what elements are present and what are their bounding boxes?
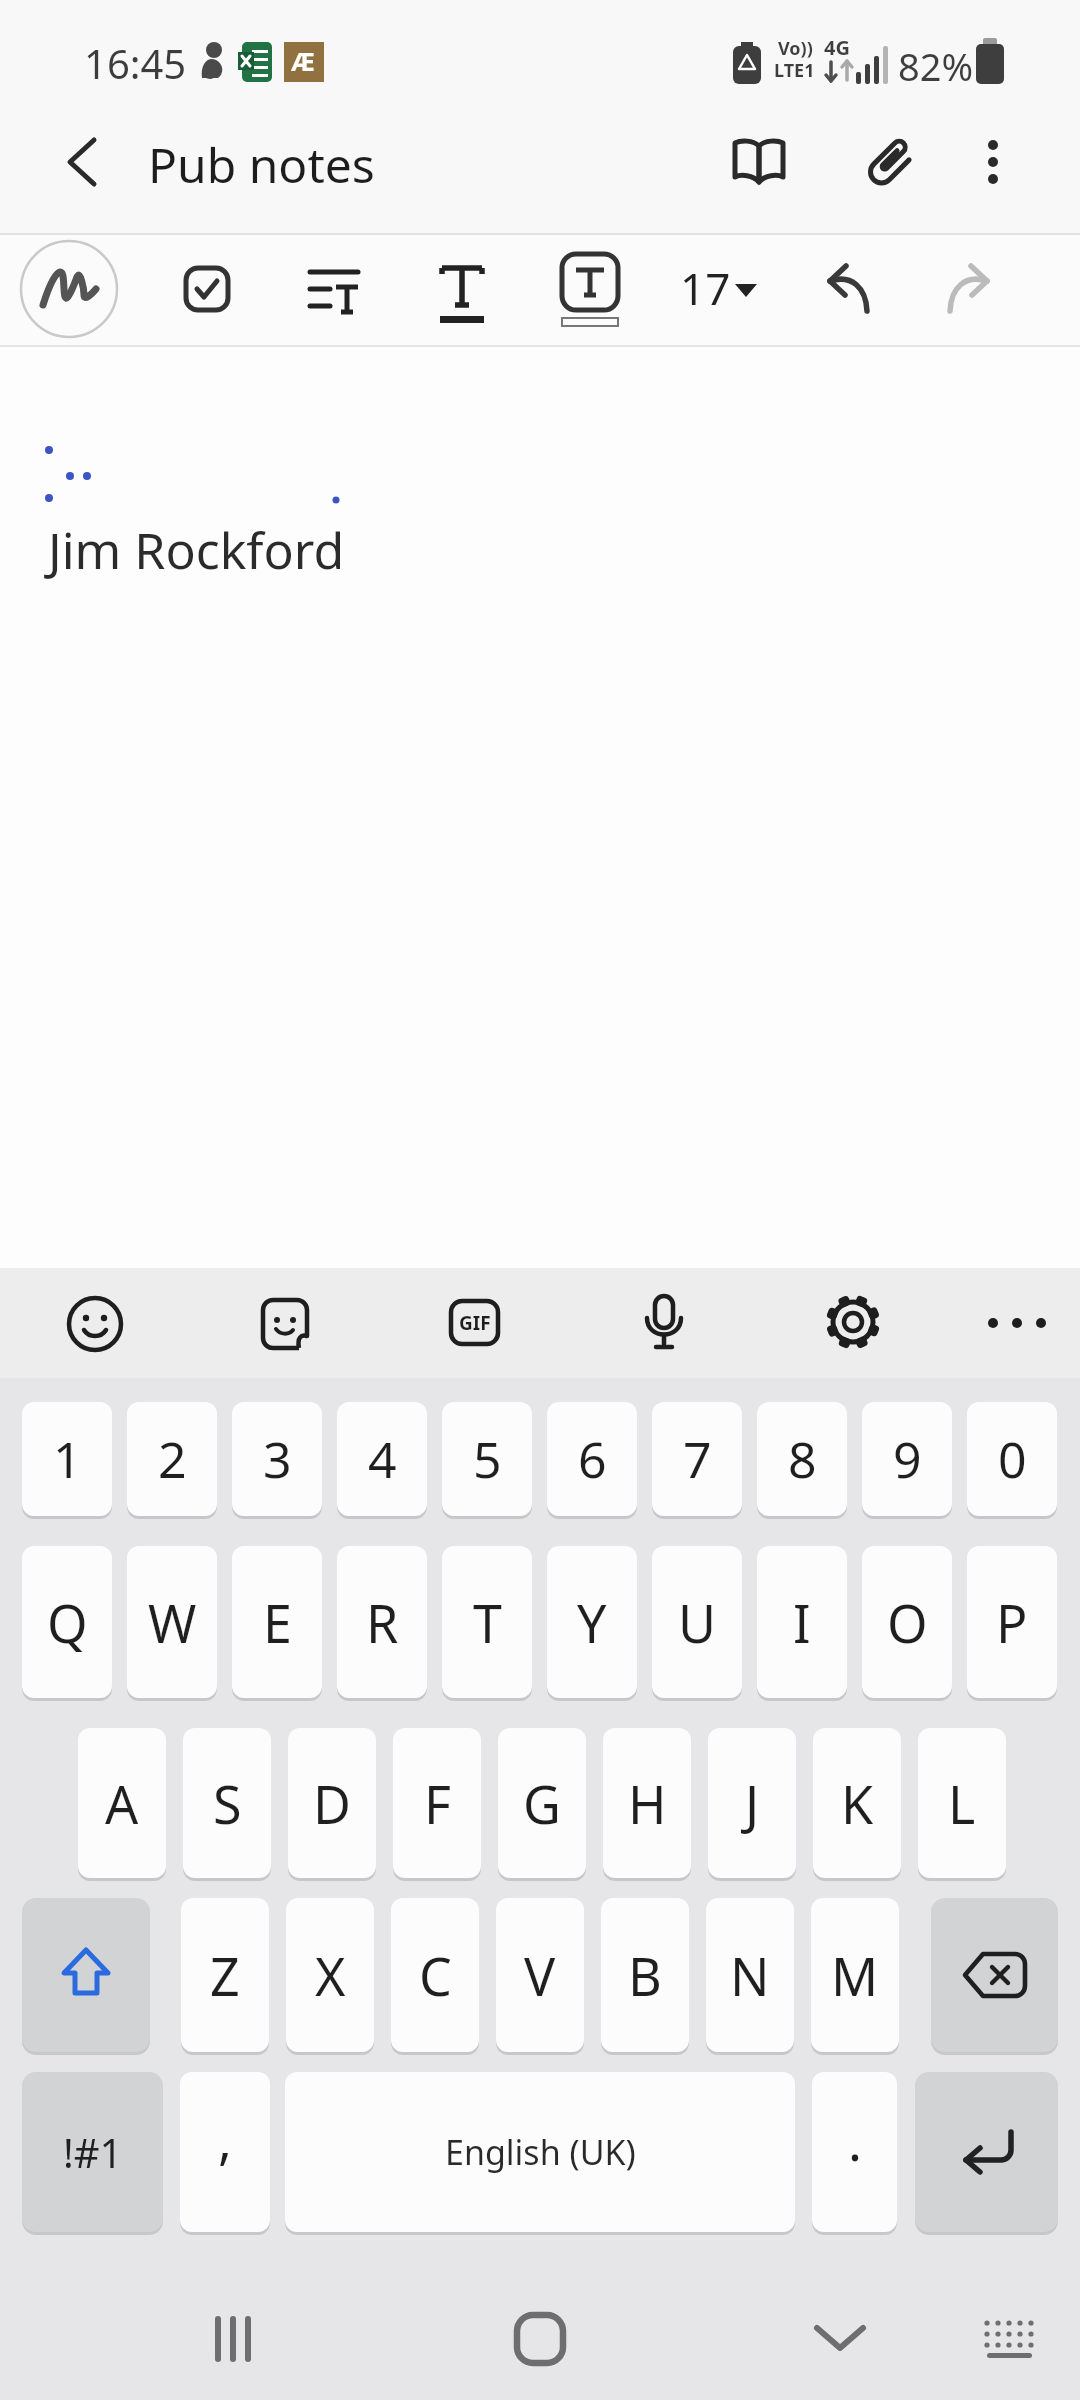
button[interactable]: I: [757, 1546, 847, 1698]
staticText: 4G: [824, 34, 850, 61]
button[interactable]: 17: [660, 248, 770, 332]
button[interactable]: [40, 120, 124, 204]
button[interactable]: [165, 248, 249, 332]
button[interactable]: K: [813, 1728, 901, 1878]
staticText: M: [831, 1940, 879, 2011]
staticText: Vo)): [778, 36, 813, 61]
button[interactable]: M: [811, 1898, 899, 2052]
button[interactable]: [243, 1280, 327, 1364]
staticText: 3: [263, 1425, 292, 1493]
button[interactable]: [960, 120, 1030, 204]
staticText: 8: [788, 1425, 817, 1493]
button[interactable]: [19, 239, 119, 339]
staticText: GIF: [459, 1310, 491, 1336]
button[interactable]: V: [496, 1898, 584, 2052]
button[interactable]: R: [337, 1546, 427, 1698]
button[interactable]: 8: [757, 1402, 847, 1516]
button[interactable]: [915, 2072, 1058, 2232]
staticText: H: [628, 1768, 667, 1839]
button[interactable]: U: [652, 1546, 742, 1698]
staticText: LTE1: [774, 58, 815, 83]
staticText: !#1: [63, 2125, 123, 2179]
staticText: B: [628, 1940, 662, 2011]
button[interactable]: [811, 1280, 895, 1364]
button[interactable]: !#1: [22, 2072, 163, 2232]
staticText: 2: [158, 1425, 187, 1493]
button[interactable]: .: [812, 2072, 897, 2232]
button[interactable]: B: [601, 1898, 689, 2052]
button[interactable]: [717, 120, 801, 204]
button[interactable]: 6: [547, 1402, 637, 1516]
staticText: Q: [47, 1587, 88, 1658]
button[interactable]: 1: [22, 1402, 112, 1516]
button[interactable]: L: [918, 1728, 1006, 1878]
staticText: 1: [53, 1425, 82, 1493]
button[interactable]: O: [862, 1546, 952, 1698]
button[interactable]: 7: [652, 1402, 742, 1516]
button[interactable]: [622, 1280, 706, 1364]
button[interactable]: 3: [232, 1402, 322, 1516]
button[interactable]: 5: [442, 1402, 532, 1516]
staticText: N: [730, 1940, 770, 2011]
button[interactable]: J: [708, 1728, 796, 1878]
button[interactable]: [420, 248, 504, 332]
staticText: 9: [893, 1425, 922, 1493]
button[interactable]: English (UK): [285, 2072, 795, 2232]
staticText: 4: [368, 1425, 397, 1493]
staticText: U: [678, 1587, 717, 1658]
button[interactable]: E: [232, 1546, 322, 1698]
staticText: English (UK): [445, 2129, 636, 2175]
button[interactable]: [292, 248, 376, 332]
button[interactable]: [848, 120, 932, 204]
staticText: 7: [683, 1425, 712, 1493]
button[interactable]: N: [706, 1898, 794, 2052]
staticText: Pub notes: [148, 132, 375, 197]
button[interactable]: D: [288, 1728, 376, 1878]
button[interactable]: G: [498, 1728, 586, 1878]
button[interactable]: GIF: [432, 1280, 516, 1364]
button[interactable]: 2: [127, 1402, 217, 1516]
button[interactable]: X: [286, 1898, 374, 2052]
button[interactable]: H: [603, 1728, 691, 1878]
button[interactable]: P: [967, 1546, 1057, 1698]
staticText: C: [419, 1940, 452, 2011]
button[interactable]: [931, 1898, 1058, 2052]
staticText: A: [105, 1768, 139, 1839]
button[interactable]: [927, 248, 1027, 332]
button[interactable]: 0: [967, 1402, 1057, 1516]
button[interactable]: [548, 240, 632, 340]
staticText: 6: [578, 1425, 607, 1493]
staticText: D: [313, 1768, 351, 1839]
staticText: J: [745, 1768, 760, 1839]
button[interactable]: [22, 1898, 150, 2052]
button[interactable]: [790, 2290, 890, 2390]
staticText: O: [887, 1587, 928, 1658]
button[interactable]: S: [183, 1728, 271, 1878]
button[interactable]: [972, 1280, 1062, 1364]
staticText: G: [523, 1768, 561, 1839]
staticText: Æ: [291, 44, 315, 78]
button[interactable]: [960, 2290, 1060, 2390]
button[interactable]: 9: [862, 1402, 952, 1516]
button[interactable]: [186, 2290, 286, 2390]
staticText: E: [263, 1587, 292, 1658]
button[interactable]: W: [127, 1546, 217, 1698]
button[interactable]: ,: [180, 2072, 270, 2232]
button[interactable]: C: [391, 1898, 479, 2052]
button[interactable]: Y: [547, 1546, 637, 1698]
button[interactable]: Q: [22, 1546, 112, 1698]
button[interactable]: 4: [337, 1402, 427, 1516]
staticText: P: [996, 1587, 1028, 1658]
button[interactable]: [790, 248, 890, 332]
button[interactable]: F: [393, 1728, 481, 1878]
button[interactable]: [490, 2290, 590, 2390]
button[interactable]: Z: [181, 1898, 269, 2052]
staticText: 17: [680, 258, 731, 318]
staticText: T: [473, 1587, 502, 1658]
button[interactable]: [53, 1280, 137, 1364]
staticText: L: [948, 1768, 976, 1839]
staticText: 0: [998, 1425, 1027, 1493]
staticText: R: [366, 1587, 399, 1658]
button[interactable]: A: [78, 1728, 166, 1878]
button[interactable]: T: [442, 1546, 532, 1698]
